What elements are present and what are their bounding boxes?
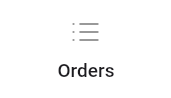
staticText: Orders [57, 59, 115, 81]
other: Orders list [0, 0, 171, 98]
button[interactable]: Orders [0, 0, 171, 98]
